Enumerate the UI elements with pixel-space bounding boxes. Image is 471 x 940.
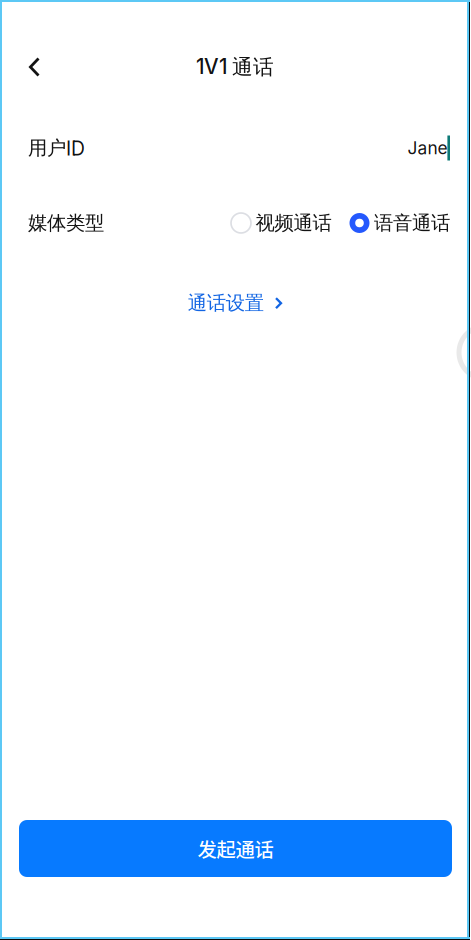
staticText: 用户ID (28, 136, 85, 160)
staticText: 发起通话 (197, 834, 273, 862)
staticText: 通话设置 (188, 291, 264, 315)
button[interactable]: 语音通话 (349, 202, 450, 244)
button[interactable]: 通话设置 (180, 283, 290, 323)
staticText: 1V1 通话 (196, 54, 274, 80)
staticText: 视频通话 (255, 211, 331, 235)
button[interactable]: 发起通话 (19, 820, 452, 877)
button[interactable]: Back (0, 45, 58, 89)
button[interactable]: 视频通话 (231, 202, 331, 244)
staticText: 语音通话 (374, 211, 450, 235)
staticText: 媒体类型 (28, 211, 104, 235)
staticText: Jane (407, 137, 447, 158)
